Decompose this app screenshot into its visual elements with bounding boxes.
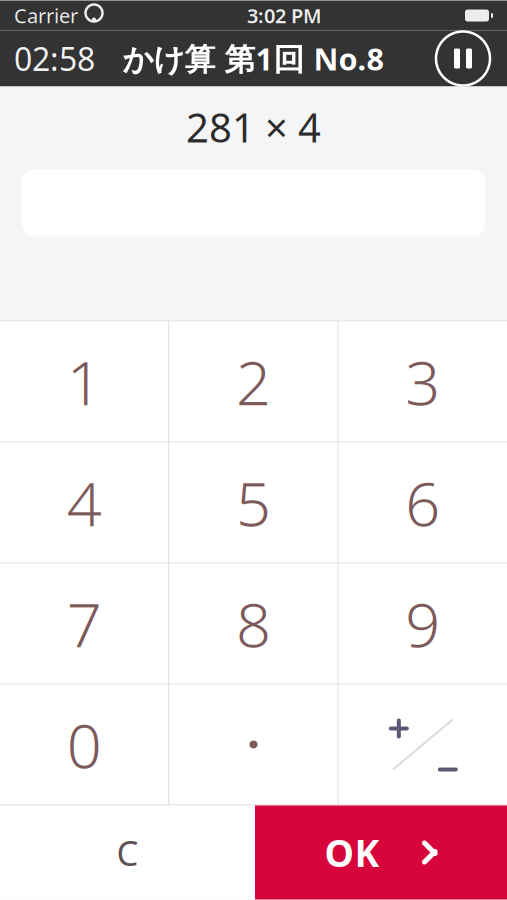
staticText: 2 — [236, 341, 271, 422]
button[interactable]: 6 — [339, 442, 507, 562]
staticText: 3:02 PM — [247, 2, 322, 29]
button[interactable]: Plus minus sign — [339, 684, 507, 804]
staticText: 0 — [67, 704, 102, 785]
staticText: 8 — [236, 583, 271, 664]
staticText: 7 — [67, 583, 102, 664]
staticText: 6 — [405, 462, 440, 543]
staticText: 5 — [236, 462, 271, 543]
button[interactable]: Decimal point — [169, 684, 338, 804]
staticText: かけ算 第1回 No.8 — [122, 38, 384, 79]
staticText: C — [116, 829, 138, 875]
button[interactable]: 2 — [169, 321, 338, 441]
button[interactable]: 9 — [339, 563, 507, 683]
button[interactable]: 1 — [0, 321, 168, 441]
button[interactable]: 7 — [0, 563, 168, 683]
button[interactable]: OK — [255, 805, 507, 899]
staticText: 02:58 — [14, 37, 95, 80]
button[interactable]: C — [0, 805, 255, 899]
button[interactable]: Pause — [432, 27, 494, 89]
staticText: 9 — [405, 583, 440, 664]
staticText: 1 — [67, 341, 102, 422]
button[interactable]: 0 — [0, 684, 168, 804]
button[interactable]: 8 — [169, 563, 338, 683]
staticText: 281 × 4 — [186, 100, 321, 154]
button[interactable]: 5 — [169, 442, 338, 562]
staticText: Carrier — [14, 2, 78, 29]
staticText: 3 — [405, 341, 440, 422]
button[interactable]: 3 — [339, 321, 507, 441]
button[interactable]: 4 — [0, 442, 168, 562]
staticText: 4 — [67, 462, 102, 543]
staticText: OK — [324, 828, 379, 877]
